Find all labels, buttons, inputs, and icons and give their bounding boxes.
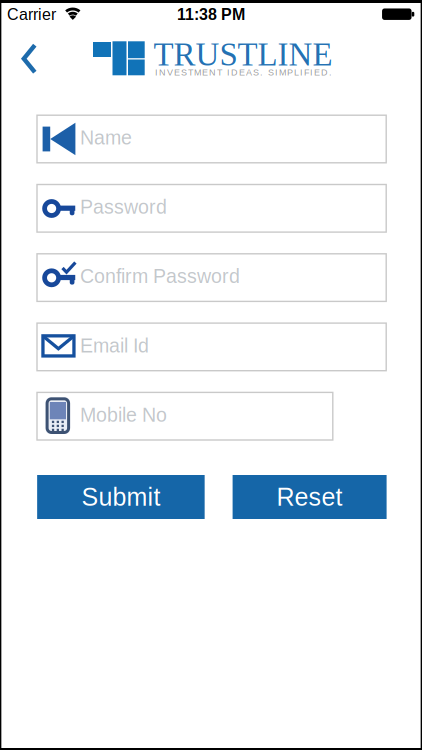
staticText: INVESTMENT IDEAS. SIMPLIFIED. xyxy=(155,67,332,77)
button[interactable]: Email Id xyxy=(36,322,387,371)
button[interactable]: Mobile No xyxy=(36,392,333,441)
staticText: Password xyxy=(80,196,167,218)
staticText: Reset xyxy=(277,483,343,511)
staticText: TRUSTLINE xyxy=(153,36,332,73)
staticText: Mobile No xyxy=(80,404,167,426)
staticText: Email Id xyxy=(80,335,149,357)
staticText: Carrier xyxy=(7,6,56,23)
button[interactable]: Password xyxy=(36,184,387,233)
button[interactable]: Reset xyxy=(233,475,387,519)
button[interactable]: Confirm Password xyxy=(36,253,387,302)
staticText: Submit xyxy=(81,483,160,511)
staticText: Confirm Password xyxy=(80,265,240,287)
button[interactable]: Submit xyxy=(37,475,205,519)
staticText: 11:38 PM xyxy=(177,6,245,23)
button[interactable]: Name xyxy=(36,114,387,163)
staticText: Name xyxy=(80,127,132,149)
button[interactable]: Back xyxy=(13,41,45,77)
